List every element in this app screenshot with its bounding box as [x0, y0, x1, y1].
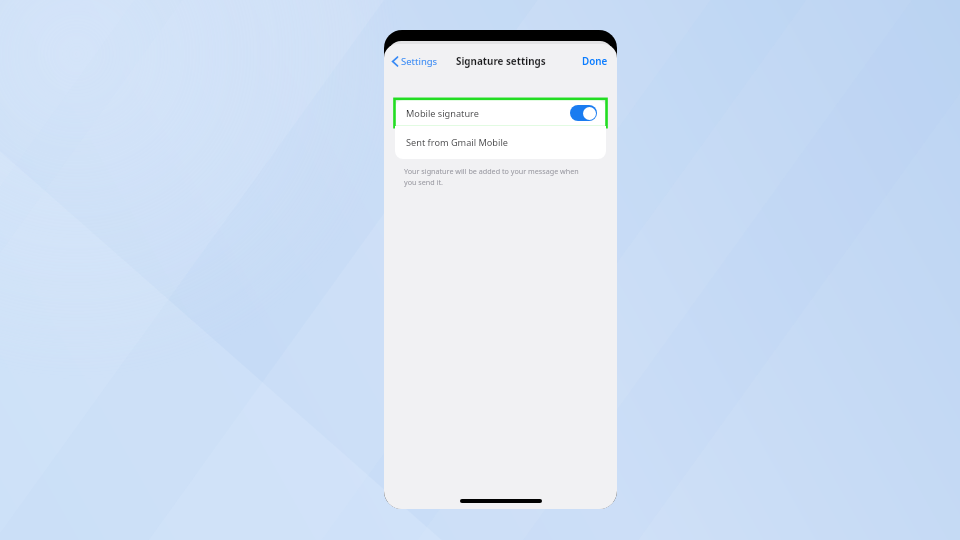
button[interactable]: Back: [389, 52, 441, 71]
staticText: Sent from Gmail Mobile: [406, 136, 508, 149]
staticText: Your signature will be added to your mes…: [404, 166, 579, 176]
button[interactable]: Done: [579, 52, 611, 71]
button[interactable]: Mobile signature toggle, on: [570, 105, 597, 121]
staticText: Settings: [401, 55, 438, 68]
staticText: you send it.: [404, 177, 443, 187]
staticText: Done: [582, 55, 608, 68]
button[interactable]: Mobile signature: [395, 100, 606, 126]
staticText: Signature settings: [456, 55, 546, 68]
button[interactable]: Sent from Gmail Mobile: [395, 126, 606, 159]
staticText: Mobile signature: [406, 107, 479, 120]
other: Back: [392, 56, 398, 67]
